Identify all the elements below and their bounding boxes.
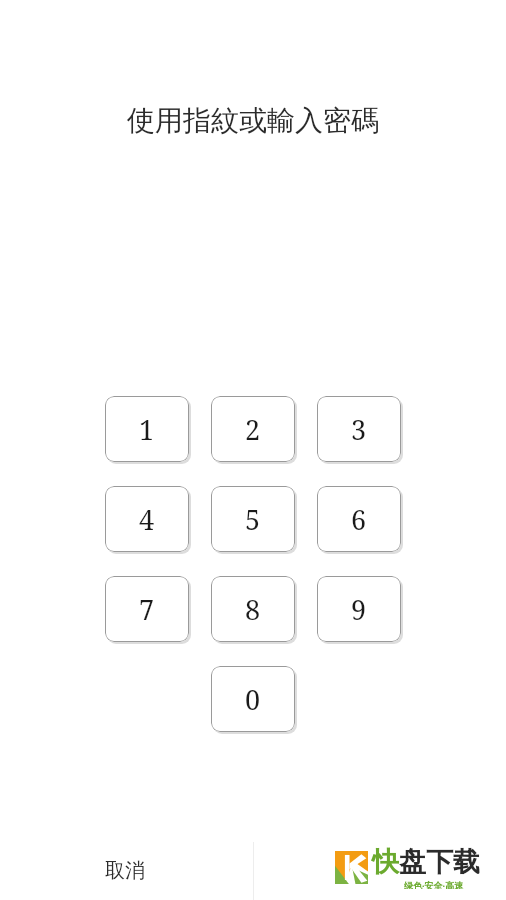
staticText: 3 xyxy=(351,411,367,448)
staticText: 使用指紋或輸入密碼 xyxy=(0,103,506,138)
staticText: 7 xyxy=(139,591,155,628)
staticText: 9 xyxy=(351,591,367,628)
staticText: 0 xyxy=(245,681,261,718)
button[interactable]: 8 xyxy=(211,576,295,642)
button[interactable]: 3 xyxy=(317,396,401,462)
staticText: 取消 xyxy=(105,858,145,883)
staticText: 快 xyxy=(372,845,399,879)
button[interactable]: 4 xyxy=(105,486,189,552)
button[interactable]: 7 xyxy=(105,576,189,642)
button[interactable]: 2 xyxy=(211,396,295,462)
staticText: 2 xyxy=(245,411,261,448)
button[interactable]: 1 xyxy=(105,396,189,462)
button[interactable]: 0 xyxy=(211,666,295,732)
button[interactable]: 6 xyxy=(317,486,401,552)
staticText: 6 xyxy=(351,501,367,538)
staticText: 5 xyxy=(245,501,261,538)
staticText: 8 xyxy=(245,591,261,628)
staticText: 1 xyxy=(139,411,155,448)
staticText: 绿色·安全·高速 xyxy=(404,879,464,889)
staticText: 4 xyxy=(139,501,155,538)
button[interactable]: 取消 xyxy=(82,846,212,894)
button[interactable]: 5 xyxy=(211,486,295,552)
button[interactable]: 9 xyxy=(317,576,401,642)
staticText: 盘下载 xyxy=(399,845,480,879)
